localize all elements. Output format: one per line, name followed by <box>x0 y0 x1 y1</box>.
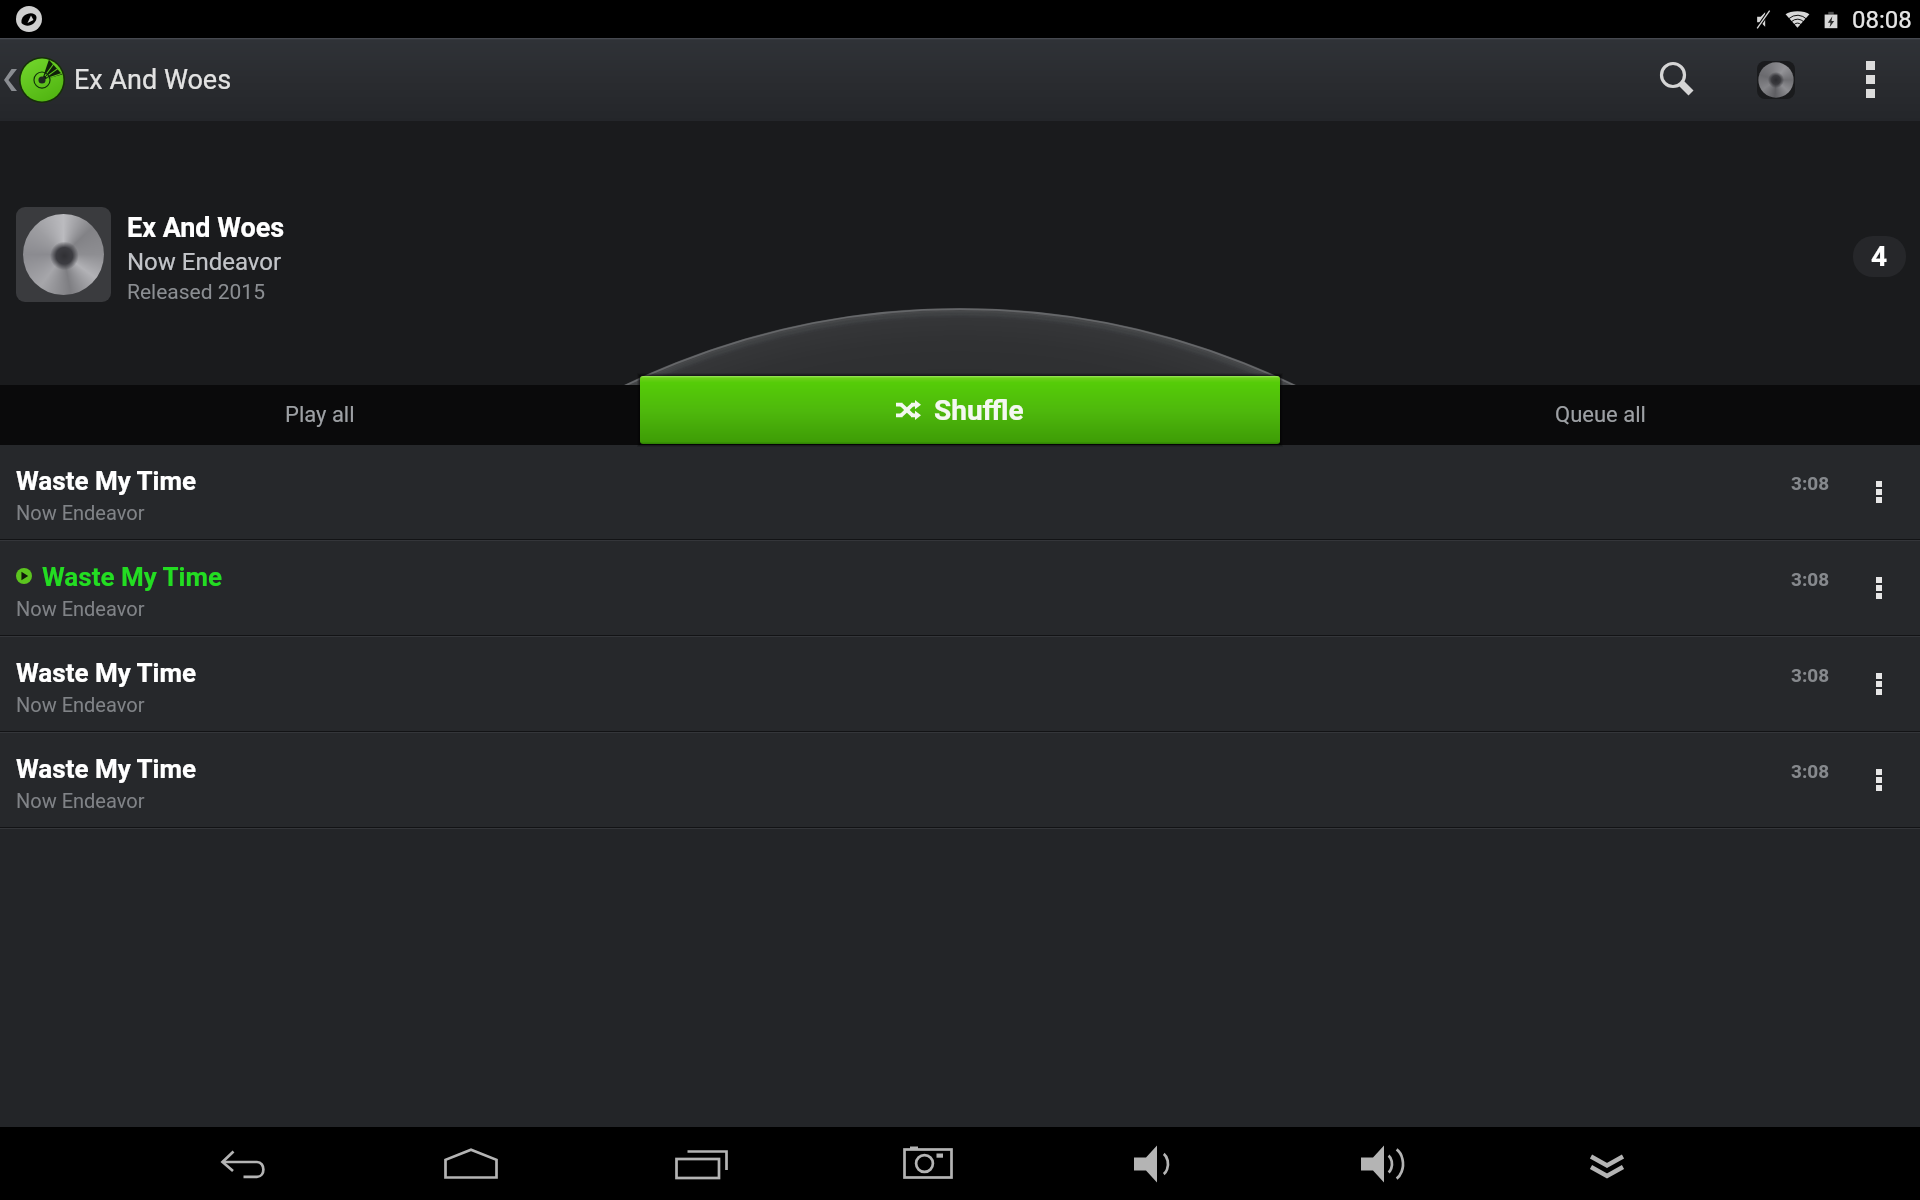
staticText: 3:08 <box>1791 568 1830 590</box>
button[interactable]: Waste My Time <box>0 541 1920 637</box>
staticText: Released 2015 <box>127 280 265 305</box>
button[interactable]: Play all <box>0 385 640 444</box>
staticText: 3:08 <box>1791 664 1830 686</box>
button[interactable]: Screenshot <box>870 1127 982 1200</box>
staticText: Queue all <box>1555 402 1646 428</box>
staticText: Now Endeavor <box>127 248 282 276</box>
staticText: 08:08 <box>1852 6 1912 34</box>
staticText: Ex And Woes <box>74 64 232 96</box>
staticText: 4 <box>1871 240 1888 273</box>
staticText: 3:08 <box>1791 760 1830 782</box>
button[interactable]: Album art <box>16 207 111 302</box>
button[interactable]: Back <box>188 1127 300 1200</box>
button[interactable]: Home <box>415 1127 527 1200</box>
staticText: Now Endeavor <box>16 789 145 812</box>
button[interactable]: Recent apps <box>642 1127 754 1200</box>
button[interactable]: More options <box>1820 38 1920 121</box>
staticText: Waste My Time <box>16 754 197 784</box>
staticText: Ex And Woes <box>127 212 285 244</box>
staticText: Shuffle <box>934 394 1024 427</box>
button[interactable]: Queue all <box>1280 385 1920 444</box>
button[interactable]: Waste My Time <box>0 637 1920 733</box>
button[interactable]: Hide navigation bar <box>1551 1127 1663 1200</box>
staticText: Waste My Time <box>16 658 197 688</box>
staticText: 3:08 <box>1791 472 1830 494</box>
button[interactable]: Song options <box>1830 445 1920 539</box>
button[interactable]: Song options <box>1830 541 1920 635</box>
staticText: Now Endeavor <box>16 597 145 620</box>
button[interactable]: Waste My Time <box>0 733 1920 829</box>
button[interactable]: Song options <box>1830 733 1920 827</box>
button[interactable]: Volume up <box>1324 1127 1436 1200</box>
staticText: Waste My Time <box>16 466 197 496</box>
button[interactable]: Search <box>1623 38 1732 121</box>
button[interactable]: Now playing <box>1732 38 1820 121</box>
staticText: Play all <box>285 402 355 428</box>
staticText: Now Endeavor <box>16 501 145 524</box>
button[interactable]: Volume down <box>1097 1127 1209 1200</box>
button[interactable]: Ex And Woes <box>0 38 232 121</box>
button[interactable]: Shuffle <box>640 376 1280 444</box>
button[interactable]: Waste My Time <box>0 445 1920 541</box>
button[interactable]: 4 <box>1853 236 1906 277</box>
staticText: Now Endeavor <box>16 693 145 716</box>
staticText: Waste My Time <box>42 562 223 592</box>
button[interactable]: Song options <box>1830 637 1920 731</box>
